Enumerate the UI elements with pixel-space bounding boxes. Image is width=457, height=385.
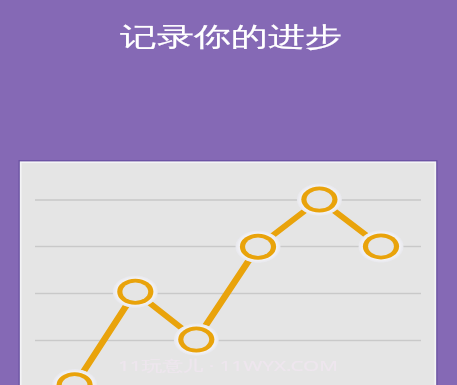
- button[interactable]: 记录你的进步: [0, 0, 457, 67]
- button[interactable]: Progress chart: [0, 0, 457, 385]
